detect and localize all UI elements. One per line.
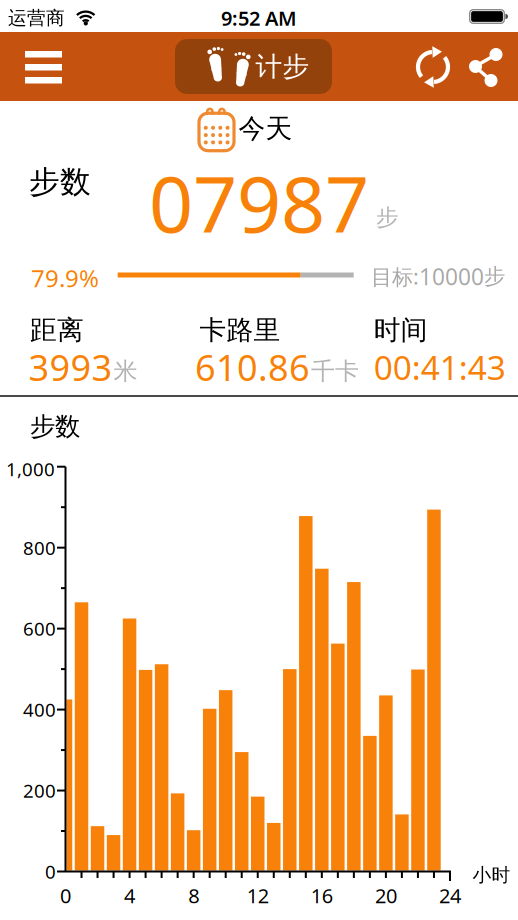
staticText: 200 — [23, 778, 56, 803]
button[interactable]: Refresh — [411, 45, 455, 89]
button[interactable]: 计步 — [175, 39, 332, 94]
staticText: 12 — [247, 882, 269, 909]
staticText: 运营商 — [8, 6, 65, 29]
staticText: 0 — [45, 859, 56, 884]
staticText: 卡路里 — [199, 314, 280, 346]
staticText: 600 — [23, 616, 56, 641]
button[interactable]: 今天 — [197, 105, 292, 151]
button[interactable]: Share — [464, 45, 508, 89]
staticText: 目标: — [371, 262, 419, 291]
staticText: 16 — [311, 882, 333, 909]
staticText: 00:41:43 — [374, 345, 506, 389]
staticText: 1,000 — [6, 457, 55, 481]
staticText: 0 — [60, 882, 71, 909]
staticText: 400 — [23, 697, 56, 722]
staticText: 8 — [188, 882, 199, 909]
button[interactable]: Menu — [19, 43, 67, 91]
staticText: 步 — [484, 263, 505, 290]
staticText: 24 — [439, 882, 461, 909]
staticText: 20 — [375, 882, 397, 909]
staticText: 距离 — [30, 314, 84, 346]
staticText: 步数 — [29, 163, 91, 201]
staticText: 3993 — [28, 343, 112, 391]
staticText: 10000 — [419, 261, 484, 291]
staticText: 米 — [113, 356, 137, 386]
staticText: 800 — [23, 535, 56, 560]
staticText: 今天 — [238, 112, 292, 145]
staticText: 9:52 AM — [221, 5, 297, 31]
staticText: 千卡 — [311, 356, 359, 386]
staticText: 时间 — [374, 314, 428, 346]
staticText: 610.86 — [195, 343, 310, 391]
staticText: 79.9% — [31, 262, 99, 294]
staticText: 07987 — [149, 151, 369, 254]
staticText: 计步 — [255, 50, 309, 83]
staticText: 步 — [376, 204, 399, 231]
staticText: 小时 — [472, 863, 510, 886]
staticText: 步数 — [30, 411, 80, 442]
staticText: 4 — [124, 882, 135, 909]
